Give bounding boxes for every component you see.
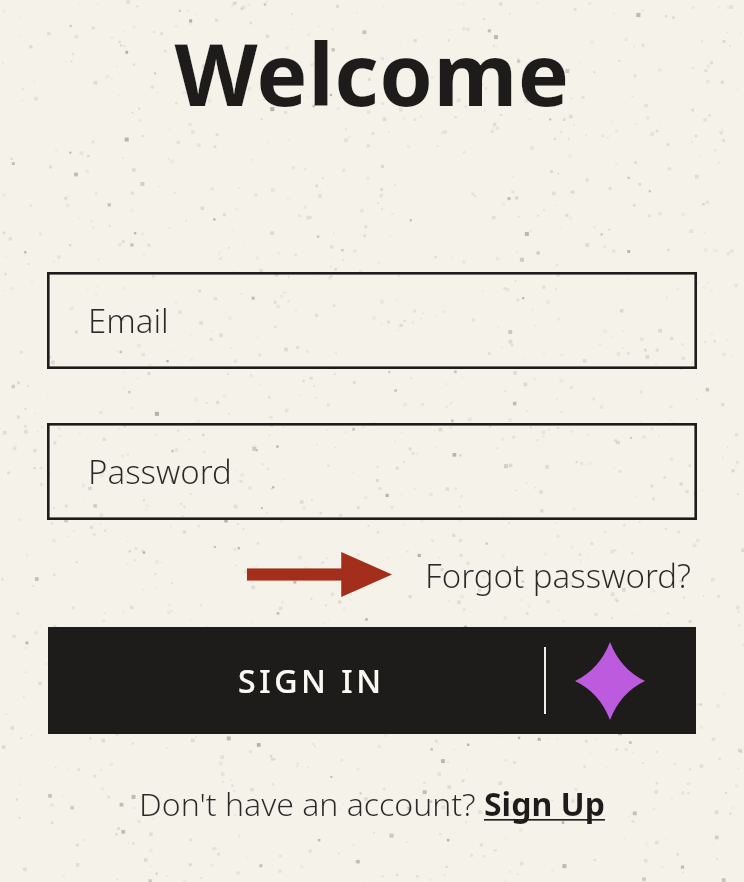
button[interactable]: SIGN IN [48,627,696,734]
other: Arrow pointing to forgot password [247,552,392,597]
button[interactable]: Forgot password? [425,553,691,598]
staticText: Email [88,298,169,343]
button[interactable]: Don't have an account? Sign Up [0,782,744,826]
staticText: SIGN IN [238,659,385,703]
button[interactable]: Password [47,423,697,520]
button[interactable]: Email [47,272,697,369]
staticText: Password [88,449,232,494]
staticText: Forgot password? [425,553,691,598]
other: Sparkle [575,642,645,720]
staticText: Don't have an account? Sign Up [139,782,605,826]
staticText: Welcome [0,14,744,131]
